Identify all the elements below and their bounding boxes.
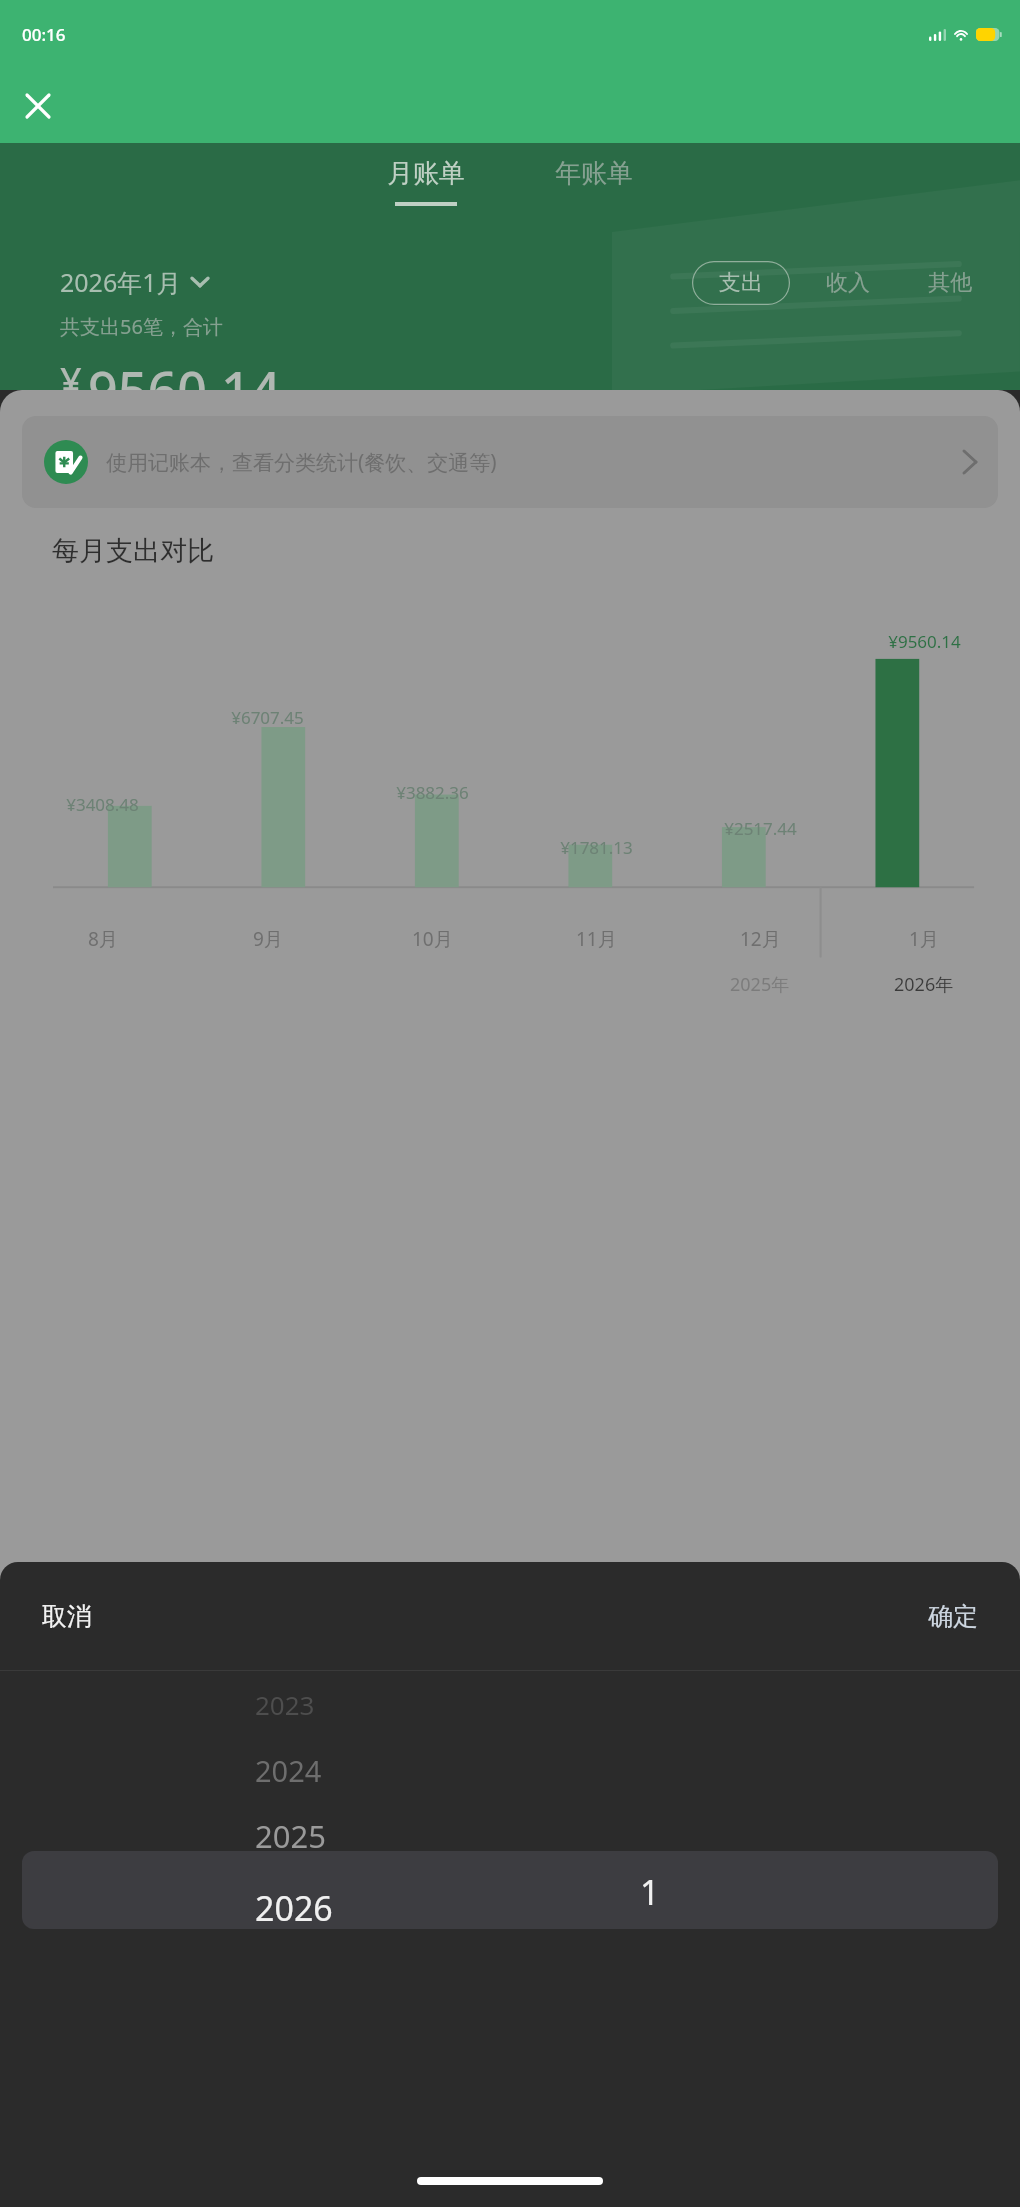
staticText: 2026 [255, 1885, 333, 1931]
staticText: 9月 [253, 926, 283, 952]
staticText: 2025 [255, 1815, 326, 1857]
button[interactable]: 取消 [0, 1589, 116, 1644]
staticText: 10月 [412, 926, 453, 952]
button[interactable]: 2026 [255, 1869, 435, 1947]
staticText: 确定 [928, 1601, 978, 1632]
button[interactable]: 2026年1月 [60, 265, 208, 299]
button[interactable]: Close [14, 82, 62, 130]
staticText: 00:16 [22, 23, 66, 46]
staticText: 其他 [928, 269, 972, 297]
staticText: 年账单 [555, 157, 633, 190]
staticText: ¥9560.14 [888, 630, 961, 653]
staticText: 1 [640, 1869, 660, 1915]
staticText: ¥3408.48 [66, 793, 139, 816]
button[interactable]: 其他 [870, 269, 972, 297]
button[interactable]: 2023 [255, 1671, 435, 1737]
staticText: 使用记账本，查看分类统计(餐饮、交通等) [106, 448, 964, 477]
staticText: 每月支出对比 [52, 534, 214, 568]
staticText: 2025年 [730, 972, 790, 997]
staticText: 2024 [255, 1751, 322, 1790]
staticText: ¥1781.13 [560, 836, 633, 859]
button[interactable]: 2024 [255, 1737, 435, 1803]
staticText: 8月 [88, 926, 118, 952]
staticText: 12月 [740, 926, 781, 952]
staticText: 共支出56笔，合计 [60, 313, 223, 340]
staticText: 2023 [255, 1687, 315, 1722]
button[interactable]: 年账单 [545, 151, 643, 212]
staticText: 2026年 [894, 972, 954, 997]
staticText: 11月 [576, 926, 617, 952]
staticText: 9560.14 [88, 354, 281, 390]
button[interactable]: 2025 [255, 1803, 435, 1869]
staticText: 收入 [826, 269, 870, 297]
button[interactable]: 月账单 [377, 151, 475, 212]
staticText: 月账单 [387, 157, 465, 190]
button[interactable]: 使用记账本，查看分类统计(餐饮、交通等) [22, 416, 998, 508]
staticText: 支出 [719, 269, 763, 297]
button[interactable]: 确定 [904, 1589, 1020, 1644]
staticText: ¥6707.45 [231, 706, 304, 729]
staticText: 2026年1月 [60, 265, 182, 299]
staticText: 取消 [42, 1601, 92, 1632]
button[interactable]: 收入 [790, 269, 870, 297]
staticText: 1月 [909, 926, 939, 952]
staticText: ¥ [60, 354, 82, 390]
button[interactable]: 支出 [692, 261, 790, 305]
staticText: ¥3882.36 [396, 781, 469, 804]
staticText: ¥2517.44 [724, 817, 797, 840]
